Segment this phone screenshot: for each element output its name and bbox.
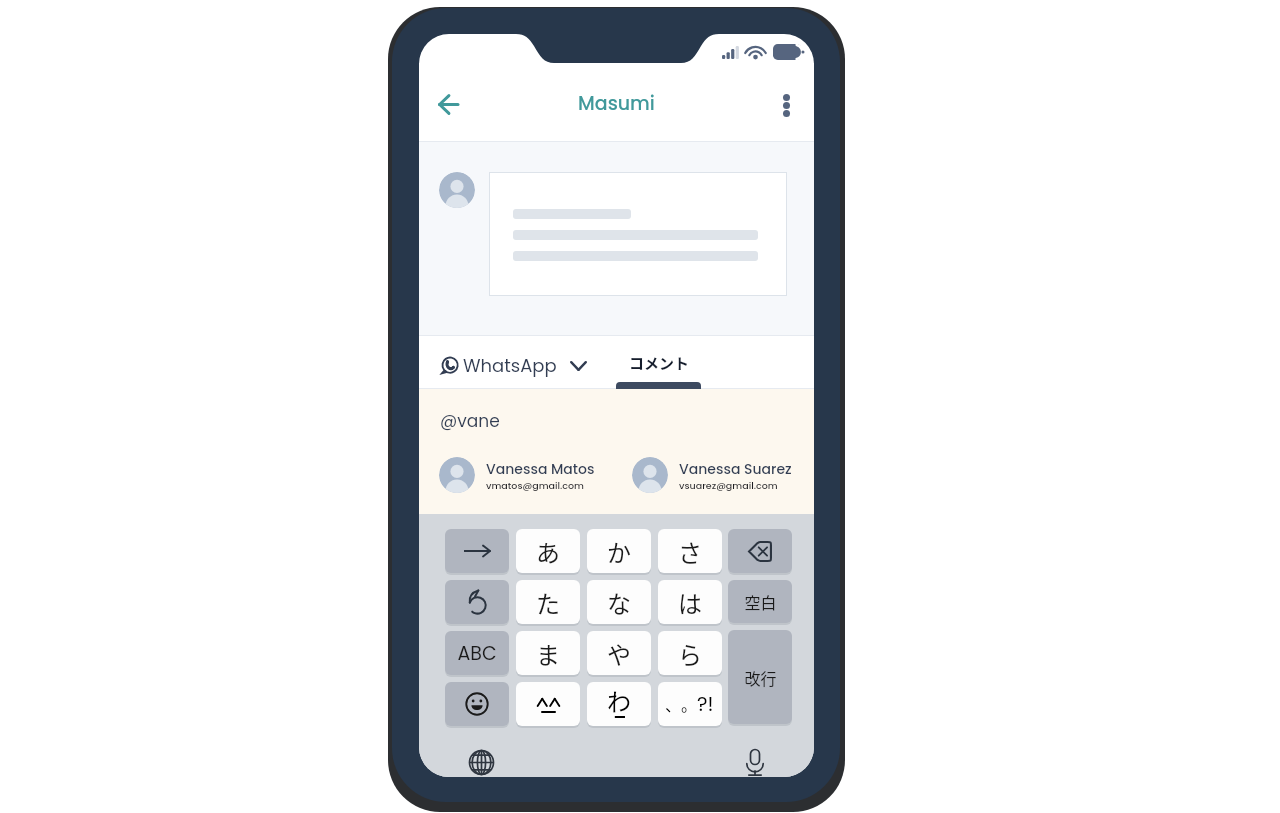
button[interactable]: な — [587, 580, 651, 624]
button[interactable]: や — [587, 631, 651, 675]
staticText: ら — [678, 636, 702, 671]
staticText: さ — [678, 534, 702, 569]
staticText: 空白 — [744, 590, 777, 613]
button[interactable]: 改行 — [728, 630, 792, 724]
staticText: あ — [536, 534, 560, 569]
button[interactable]: さ — [658, 529, 722, 573]
staticText: @vane — [440, 409, 500, 433]
button[interactable]: ABC — [445, 631, 509, 675]
button[interactable]: ま — [516, 631, 580, 675]
staticText: わ — [607, 683, 631, 718]
button[interactable] — [489, 172, 787, 296]
staticText: Vanessa Matos — [486, 459, 595, 479]
button[interactable]: Back — [426, 82, 470, 126]
staticText: か — [607, 534, 631, 569]
staticText: ?! — [697, 690, 714, 718]
button[interactable]: わ — [587, 682, 651, 726]
button[interactable]: 、。 — [658, 682, 722, 726]
staticText: は — [678, 585, 702, 620]
button[interactable] — [516, 682, 580, 726]
button[interactable]: Voice input — [742, 749, 768, 775]
staticText: vmatos@gmail.com — [486, 479, 584, 492]
staticText: コメント — [629, 352, 690, 374]
button[interactable]: 空白 — [728, 580, 792, 623]
staticText: や — [607, 636, 631, 671]
staticText: 、。 — [665, 692, 698, 715]
button[interactable]: Vanessa Matos — [439, 457, 595, 493]
button[interactable] — [728, 529, 792, 573]
button[interactable]: More options — [767, 86, 805, 124]
button[interactable]: た — [516, 580, 580, 624]
button[interactable] — [445, 529, 509, 573]
button[interactable]: WhatsApp — [440, 339, 814, 392]
staticText: た — [536, 585, 560, 620]
button[interactable]: Change keyboard language — [468, 749, 494, 775]
staticText: 改行 — [744, 666, 777, 689]
button[interactable]: は — [658, 580, 722, 624]
button[interactable] — [445, 580, 509, 624]
button[interactable]: コメント — [616, 336, 814, 389]
staticText: vsuarez@gmail.com — [679, 479, 778, 492]
staticText: Vanessa Suarez — [679, 459, 792, 479]
button[interactable] — [445, 682, 509, 726]
staticText: ABC — [457, 640, 497, 667]
staticText: ま — [536, 636, 560, 671]
button[interactable]: Vanessa Suarez — [632, 457, 792, 493]
staticText: WhatsApp — [463, 353, 557, 378]
button[interactable]: ら — [658, 631, 722, 675]
staticText: Masumi — [578, 90, 655, 117]
staticText: な — [607, 585, 631, 620]
button[interactable]: あ — [516, 529, 580, 573]
button[interactable]: か — [587, 529, 651, 573]
